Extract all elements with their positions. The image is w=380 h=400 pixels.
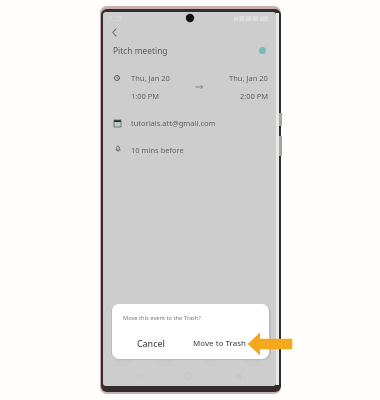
button[interactable]: Move to Trash <box>188 333 252 354</box>
staticText: Thu, Jan 20 <box>131 73 170 83</box>
staticText: 1:00 PM <box>131 91 160 101</box>
staticText: Move to Trash <box>193 338 247 349</box>
button[interactable]: Cancel <box>132 333 169 354</box>
staticText: tutorials.att@gmail.com <box>131 118 216 128</box>
button[interactable]: Back <box>106 24 123 41</box>
staticText: Move this event to the Trash? <box>123 314 201 322</box>
staticText: Pitch meeting <box>113 45 168 56</box>
staticText: 1:39 <box>109 14 122 22</box>
staticText: Thu, Jan 20 <box>229 73 268 83</box>
staticText: Cancel <box>137 338 165 350</box>
staticText: 2:00 PM <box>240 91 269 101</box>
staticText: 10 mins before <box>131 145 184 155</box>
